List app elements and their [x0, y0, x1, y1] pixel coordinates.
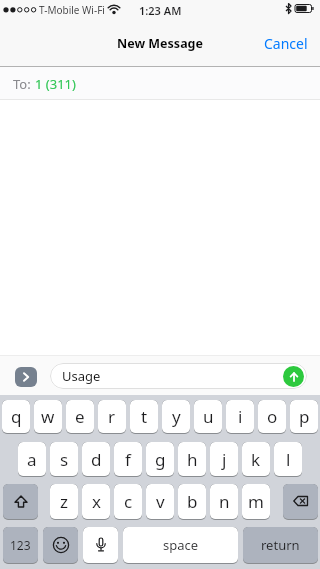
button[interactable]	[3, 484, 38, 519]
button[interactable]: y	[162, 400, 190, 433]
button[interactable]: n	[210, 484, 238, 519]
button[interactable]: j	[210, 442, 238, 476]
button[interactable]: Usage	[50, 363, 307, 389]
button[interactable]: v	[146, 484, 174, 519]
staticText: 123	[10, 537, 31, 553]
staticText: t	[141, 405, 148, 428]
button[interactable]	[43, 527, 78, 563]
button[interactable]: o	[258, 400, 286, 433]
button[interactable]: t	[130, 400, 158, 433]
staticText: a	[27, 448, 37, 471]
button[interactable]: a	[18, 442, 46, 476]
button[interactable]: To:	[0, 67, 320, 100]
staticText: b	[187, 490, 198, 513]
staticText: j	[222, 448, 227, 471]
button[interactable]: g	[146, 442, 174, 476]
staticText: e	[75, 405, 85, 428]
button[interactable]: u	[194, 400, 222, 433]
staticText: r	[108, 405, 116, 428]
staticText: return	[261, 536, 300, 554]
button[interactable]: f	[114, 442, 142, 476]
staticText: w	[41, 405, 55, 428]
staticText: Cancel	[264, 34, 308, 53]
button[interactable]: m	[242, 484, 270, 519]
staticText: Usage	[62, 367, 101, 385]
button[interactable]: q	[2, 400, 30, 433]
staticText: n	[219, 490, 230, 513]
staticText: To:	[13, 75, 35, 93]
button[interactable]: return	[243, 527, 318, 563]
staticText: space	[163, 536, 199, 554]
staticText: h	[187, 448, 198, 471]
staticText: q	[11, 405, 22, 428]
staticText: v	[156, 490, 165, 513]
button[interactable]: r	[98, 400, 126, 433]
staticText: u	[203, 405, 214, 428]
staticText: 1 (311)	[35, 75, 76, 93]
button[interactable]: c	[114, 484, 142, 519]
button[interactable]: 123	[3, 527, 38, 563]
staticText: g	[155, 448, 166, 471]
button[interactable]: d	[82, 442, 110, 476]
button[interactable]	[283, 366, 304, 387]
staticText: d	[91, 448, 102, 471]
button[interactable]: x	[82, 484, 110, 519]
staticText: m	[248, 490, 264, 513]
staticText: z	[60, 490, 68, 513]
staticText: l	[286, 448, 291, 471]
staticText: New Message	[117, 35, 203, 52]
staticText: x	[92, 490, 101, 513]
button[interactable]	[283, 484, 318, 519]
staticText: c	[124, 490, 133, 513]
button[interactable]: z	[50, 484, 78, 519]
button[interactable]: k	[242, 442, 270, 476]
button[interactable]: b	[178, 484, 206, 519]
button[interactable]: Cancel	[252, 26, 320, 61]
button[interactable]: w	[34, 400, 62, 433]
staticText: p	[299, 405, 310, 428]
button[interactable]: l	[274, 442, 302, 476]
staticText: y	[172, 405, 181, 428]
button[interactable]: p	[290, 400, 318, 433]
staticText: f	[125, 448, 131, 471]
button[interactable]	[83, 527, 118, 563]
button[interactable]: h	[178, 442, 206, 476]
button[interactable]: e	[66, 400, 94, 433]
staticText: o	[267, 405, 278, 428]
button[interactable]	[15, 367, 37, 387]
staticText: T-Mobile Wi-Fi	[39, 3, 105, 17]
staticText: 1:23 AM	[139, 3, 182, 18]
staticText: s	[60, 448, 69, 471]
button[interactable]: s	[50, 442, 78, 476]
button[interactable]: i	[226, 400, 254, 433]
staticText: k	[251, 448, 261, 471]
button[interactable]: space	[123, 527, 238, 563]
staticText: i	[238, 405, 243, 428]
